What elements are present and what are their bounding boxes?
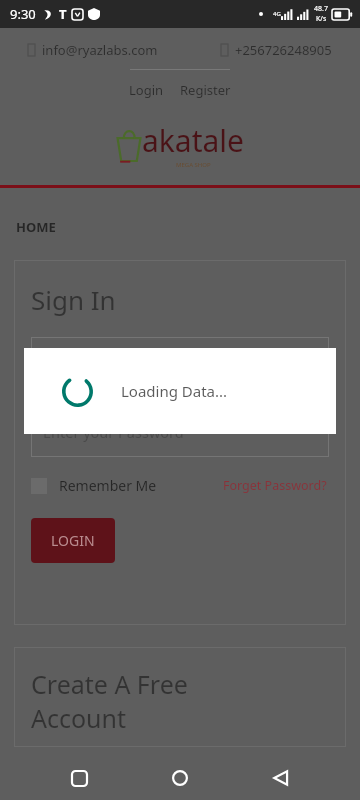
button[interactable]: Back [259, 756, 303, 800]
staticText: Sign In [31, 282, 116, 317]
staticText: Forget Password? [223, 477, 327, 494]
staticText: LOGIN [51, 531, 95, 550]
button[interactable]: Recent apps [57, 756, 101, 800]
staticText: HOME [16, 218, 56, 236]
button[interactable]: Enter your Password [31, 406, 329, 457]
staticText: Remember Me [59, 476, 157, 495]
staticText: info@ryazlabs.com [42, 41, 158, 59]
button[interactable]: Login [125, 79, 168, 101]
staticText: T [59, 5, 67, 23]
staticText: Register [180, 81, 231, 99]
staticText: akatale [142, 120, 244, 161]
button[interactable]: Remember Me [31, 476, 157, 495]
staticText: Create A Free [31, 667, 188, 701]
staticText: Enter your Password [43, 422, 184, 442]
button[interactable]: LOGIN [31, 518, 115, 563]
staticText: 48.7 [314, 4, 328, 14]
staticText: 9:30 [10, 5, 36, 23]
staticText: Login [129, 81, 164, 99]
staticText: 4G [273, 10, 281, 18]
staticText: K/s [316, 14, 327, 24]
button[interactable]: Forget Password? [221, 475, 329, 496]
staticText: Account [31, 701, 127, 735]
button[interactable]: Register [176, 79, 235, 101]
staticText: +256726248905 [235, 41, 332, 59]
button[interactable]: Home [158, 756, 202, 800]
staticText: Loading Data... [121, 381, 228, 401]
staticText: MEGA SHOP [176, 161, 211, 169]
button[interactable]: Enter your Username or email [31, 337, 329, 388]
